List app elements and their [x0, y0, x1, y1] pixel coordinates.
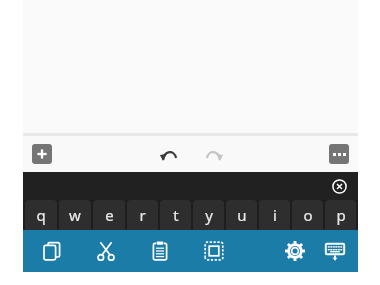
button[interactable]: o	[292, 200, 323, 230]
button[interactable]: Undo	[153, 139, 183, 169]
staticText: w	[69, 205, 81, 225]
button[interactable]: Close suggestions	[328, 175, 350, 197]
button[interactable]: Paste	[145, 236, 175, 266]
button[interactable]: t	[160, 200, 191, 230]
button[interactable]: Copy	[37, 236, 67, 266]
staticText: t	[173, 205, 179, 225]
staticText: o	[303, 205, 313, 225]
button[interactable]: Cut	[91, 236, 121, 266]
button[interactable]: q	[25, 200, 57, 230]
staticText: y	[205, 205, 213, 225]
button[interactable]: Redo	[199, 139, 229, 169]
staticText: u	[237, 205, 247, 225]
button[interactable]: w	[59, 200, 91, 230]
button[interactable]: e	[93, 200, 125, 230]
button[interactable]: Hide keyboard	[320, 236, 350, 266]
button[interactable]: r	[127, 200, 158, 230]
button[interactable]: u	[226, 200, 257, 230]
staticText: i	[273, 205, 277, 225]
staticText: q	[36, 205, 46, 225]
button[interactable]: Select all	[199, 236, 229, 266]
button[interactable]: i	[259, 200, 290, 230]
button[interactable]: More options	[329, 144, 349, 164]
button[interactable]: y	[193, 200, 224, 230]
button[interactable]: Insert	[32, 144, 52, 164]
button[interactable]: Settings	[280, 236, 310, 266]
staticText: e	[105, 205, 114, 225]
staticText: p	[336, 205, 346, 225]
staticText: r	[139, 205, 146, 225]
button[interactable]: p	[325, 200, 356, 230]
